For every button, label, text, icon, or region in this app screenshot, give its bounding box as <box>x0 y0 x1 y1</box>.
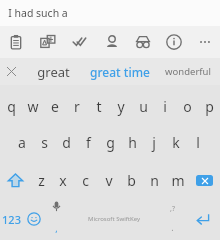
button[interactable]: n <box>143 161 166 199</box>
button[interactable]: p <box>198 88 220 124</box>
button[interactable]: wonderful <box>155 58 220 85</box>
button[interactable]: s <box>33 124 55 161</box>
button[interactable]: q <box>0 88 22 124</box>
button[interactable]: Punctuation <box>159 199 185 239</box>
staticText: , <box>55 222 58 234</box>
staticText: k <box>172 133 180 152</box>
button[interactable]: Voice input <box>44 199 68 239</box>
button[interactable]: c <box>74 161 97 199</box>
button[interactable]: I had such a <box>0 0 220 26</box>
staticText: . <box>171 221 174 233</box>
button[interactable]: Microsoft SwiftKey <box>68 199 159 239</box>
button[interactable]: r <box>66 88 88 124</box>
button[interactable]: Incognito <box>127 26 158 58</box>
button[interactable]: Tasks <box>64 26 96 58</box>
staticText: s <box>41 133 48 152</box>
button[interactable]: Emoji <box>23 199 44 239</box>
button[interactable]: u <box>132 88 154 124</box>
staticText: t <box>96 97 102 116</box>
button[interactable]: d <box>55 124 77 161</box>
button[interactable]: l <box>187 124 209 161</box>
staticText: c <box>82 171 89 190</box>
button[interactable]: Shift <box>0 161 30 199</box>
button[interactable]: j <box>143 124 165 161</box>
button[interactable]: 123 <box>0 199 23 239</box>
button[interactable]: Account <box>96 26 127 58</box>
staticText: b <box>127 171 136 190</box>
staticText: n <box>150 171 159 190</box>
staticText: Microsoft SwiftKey <box>88 215 140 223</box>
staticText: z <box>38 171 45 190</box>
button[interactable]: great <box>22 58 84 85</box>
staticText: e <box>51 97 59 116</box>
staticText: great time <box>90 64 150 80</box>
staticText: u <box>139 97 148 116</box>
button[interactable]: o <box>176 88 198 124</box>
button[interactable]: a <box>11 124 33 161</box>
button[interactable]: Enter <box>185 199 220 239</box>
staticText: l <box>196 133 200 152</box>
button[interactable]: f <box>77 124 99 161</box>
button[interactable]: e <box>44 88 66 124</box>
button[interactable]: z <box>30 161 52 199</box>
staticText: h <box>128 133 137 152</box>
staticText: i <box>163 97 167 116</box>
staticText: a <box>18 133 26 152</box>
button[interactable]: Translate <box>32 26 64 58</box>
button[interactable]: m <box>166 161 189 199</box>
button[interactable]: g <box>99 124 121 161</box>
staticText: g <box>106 133 115 152</box>
button[interactable]: h <box>121 124 143 161</box>
button[interactable]: k <box>165 124 187 161</box>
button[interactable]: w <box>22 88 44 124</box>
button[interactable]: y <box>110 88 132 124</box>
button[interactable]: i <box>154 88 176 124</box>
button[interactable]: great time <box>84 58 155 85</box>
staticText: y <box>117 97 125 116</box>
button[interactable]: x <box>52 161 74 199</box>
staticText: great <box>37 63 70 81</box>
button[interactable]: v <box>97 161 120 199</box>
staticText: f <box>86 133 91 152</box>
staticText: r <box>74 97 80 116</box>
staticText: o <box>183 97 192 116</box>
button[interactable]: Info <box>158 26 189 58</box>
button[interactable]: Backspace <box>189 161 220 199</box>
staticText: m <box>171 171 185 190</box>
button[interactable]: More <box>189 26 220 58</box>
staticText: I had such a <box>8 6 68 20</box>
button[interactable]: b <box>120 161 143 199</box>
button[interactable]: t <box>88 88 110 124</box>
staticText: j <box>152 133 156 152</box>
staticText: x <box>59 171 67 190</box>
staticText: d <box>62 133 71 152</box>
button[interactable]: Clipboard <box>0 26 32 58</box>
staticText: p <box>205 97 214 116</box>
staticText: ,? <box>170 204 175 214</box>
staticText: wonderful <box>165 65 211 78</box>
staticText: q <box>7 97 16 116</box>
button[interactable]: Close suggestions <box>0 58 22 85</box>
staticText: 123 <box>2 212 21 227</box>
staticText: w <box>27 97 39 116</box>
staticText: v <box>105 171 113 190</box>
